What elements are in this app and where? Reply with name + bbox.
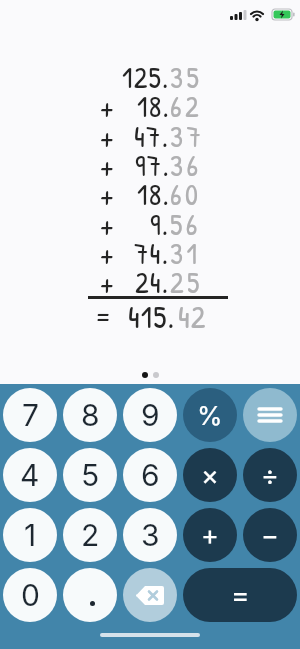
staticText: 60	[170, 175, 202, 205]
staticText: 2	[81, 517, 100, 553]
button[interactable]: ×	[183, 448, 237, 502]
staticText: 8	[81, 397, 100, 433]
button[interactable]	[63, 568, 117, 622]
button[interactable]: 6	[123, 448, 177, 502]
staticText: 56	[170, 205, 201, 235]
button[interactable]: 5	[63, 448, 117, 502]
staticText: 7	[22, 397, 39, 433]
staticText: =	[94, 296, 113, 328]
staticText: 415.	[128, 296, 176, 328]
staticText: +	[100, 234, 116, 264]
button[interactable]: 0	[3, 568, 57, 622]
button[interactable]: 2	[63, 508, 117, 562]
button[interactable]	[123, 568, 177, 622]
button[interactable]: 8	[63, 388, 117, 442]
staticText: %	[197, 400, 223, 431]
staticText: 31	[170, 234, 201, 264]
button[interactable]: %	[183, 388, 237, 442]
staticText: 18.	[137, 175, 170, 205]
staticText: 3	[141, 517, 160, 553]
staticText: 6	[141, 457, 160, 493]
staticText: 18.	[137, 87, 170, 117]
staticText: +	[201, 519, 219, 552]
staticText: 24.	[135, 263, 170, 293]
staticText: 35	[170, 58, 203, 88]
staticText: 125.	[122, 58, 170, 88]
staticText: 25	[170, 263, 203, 293]
button[interactable]: 1	[3, 508, 57, 562]
button[interactable]: ÷	[243, 448, 297, 502]
staticText: +	[100, 117, 116, 147]
staticText: 36	[170, 146, 202, 176]
staticText: 0	[21, 577, 40, 613]
staticText: 9.	[150, 205, 170, 235]
staticText: 42	[178, 296, 207, 328]
button[interactable]: =	[183, 568, 297, 622]
button[interactable]: 4	[3, 448, 57, 502]
staticText: −	[261, 519, 279, 552]
staticText: 74.	[134, 234, 170, 264]
staticText: +	[100, 175, 116, 205]
staticText: 47.	[134, 117, 170, 147]
staticText: 62	[170, 87, 203, 117]
staticText: 1	[24, 517, 37, 553]
staticText: 4	[20, 457, 40, 493]
staticText: 97.	[135, 146, 170, 176]
staticText: 37	[170, 117, 205, 147]
button[interactable]: +	[183, 508, 237, 562]
staticText: ×	[201, 459, 219, 492]
staticText: =	[231, 578, 250, 612]
button[interactable]: 7	[3, 388, 57, 442]
staticText: 5	[81, 457, 100, 493]
staticText: +	[100, 87, 116, 117]
button[interactable]	[243, 388, 297, 442]
button[interactable]: 9	[123, 388, 177, 442]
staticText: 9	[141, 397, 160, 433]
staticText: +	[100, 263, 116, 293]
button[interactable]: −	[243, 508, 297, 562]
staticText: +	[100, 146, 116, 176]
staticText: ÷	[261, 459, 279, 492]
button[interactable]: 3	[123, 508, 177, 562]
staticText: +	[100, 205, 116, 235]
